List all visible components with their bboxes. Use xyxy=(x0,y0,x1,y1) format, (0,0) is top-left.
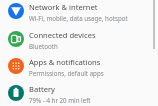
other: Connected devices xyxy=(8,31,24,47)
staticText: Apps & notifications xyxy=(29,57,101,67)
other: Network and internet xyxy=(8,3,24,19)
other: Battery xyxy=(8,85,24,101)
staticText: 79% - 4 hr 20 min left xyxy=(29,96,91,104)
staticText: Bluetooth xyxy=(29,42,58,50)
staticText: Connected devices xyxy=(29,30,96,40)
staticText: Battery xyxy=(29,84,55,94)
staticText: Wi-Fi, mobile, data usage, hotspot xyxy=(29,14,128,22)
staticText: Network & internet xyxy=(29,2,98,12)
staticText: Permissions, default apps xyxy=(29,69,104,77)
other: Apps and notifications xyxy=(8,58,24,74)
button[interactable]: Apps and notifications xyxy=(0,57,158,81)
button[interactable]: Battery xyxy=(0,84,158,106)
button[interactable]: Network and internet xyxy=(0,2,158,26)
button[interactable]: Connected devices xyxy=(0,30,158,54)
